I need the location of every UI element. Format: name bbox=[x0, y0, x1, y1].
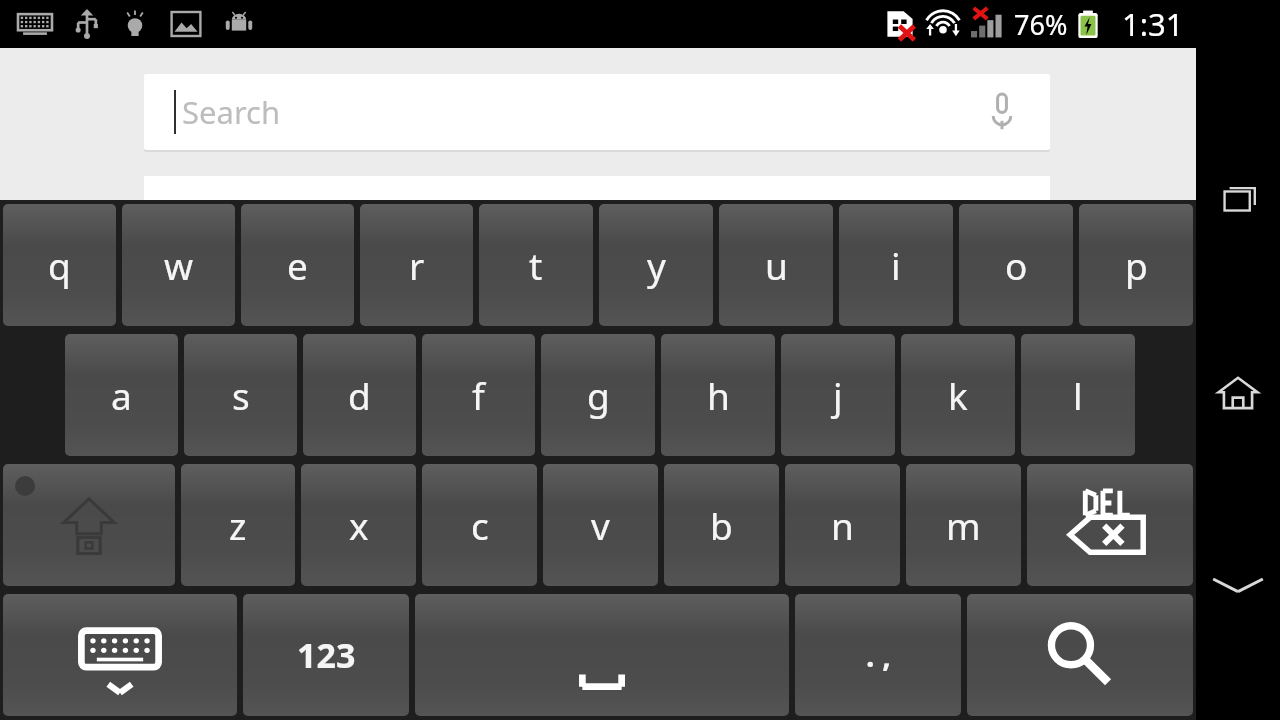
staticText: o bbox=[1005, 240, 1028, 290]
button[interactable]: s bbox=[184, 334, 297, 456]
button[interactable]: Recents bbox=[1203, 166, 1273, 236]
staticText: y bbox=[647, 240, 666, 290]
staticText: c bbox=[471, 500, 489, 550]
staticText: r bbox=[409, 240, 425, 290]
staticText: i bbox=[891, 240, 901, 290]
button[interactable]: m bbox=[906, 464, 1021, 586]
staticText: 1:31 bbox=[1122, 3, 1184, 45]
staticText: f bbox=[472, 370, 485, 420]
staticText: 76% bbox=[1014, 6, 1068, 43]
button[interactable]: c bbox=[422, 464, 537, 586]
staticText: . , bbox=[866, 635, 891, 676]
button[interactable]: Shift bbox=[3, 464, 175, 586]
staticText: q bbox=[48, 240, 71, 290]
button[interactable]: f bbox=[422, 334, 535, 456]
button[interactable]: n bbox=[785, 464, 900, 586]
button[interactable]: k bbox=[901, 334, 1015, 456]
staticText: b bbox=[710, 500, 733, 550]
button[interactable]: u bbox=[719, 204, 833, 326]
button[interactable]: l bbox=[1021, 334, 1135, 456]
button[interactable]: Search bbox=[967, 594, 1193, 716]
button[interactable]: Search bbox=[144, 74, 1050, 150]
button[interactable]: e bbox=[241, 204, 354, 326]
staticText: n bbox=[831, 500, 854, 550]
button[interactable]: a bbox=[65, 334, 178, 456]
button[interactable]: t bbox=[479, 204, 593, 326]
button[interactable]: p bbox=[1079, 204, 1193, 326]
staticText: 123 bbox=[297, 632, 356, 678]
button[interactable]: Voice search bbox=[980, 90, 1024, 134]
button[interactable]: Home bbox=[1203, 358, 1273, 428]
button[interactable]: Space bbox=[415, 594, 789, 716]
staticText: t bbox=[529, 240, 543, 290]
staticText: u bbox=[765, 240, 788, 290]
button[interactable]: v bbox=[543, 464, 658, 586]
button[interactable]: z bbox=[181, 464, 295, 586]
button[interactable]: Delete bbox=[1027, 464, 1193, 586]
button[interactable]: Hide keyboard bbox=[3, 594, 237, 716]
button[interactable]: d bbox=[303, 334, 416, 456]
button[interactable]: x bbox=[301, 464, 416, 586]
staticText: d bbox=[348, 370, 371, 420]
button[interactable]: w bbox=[122, 204, 235, 326]
staticText: m bbox=[946, 500, 981, 550]
button[interactable]: i bbox=[839, 204, 953, 326]
staticText: Search bbox=[182, 91, 281, 133]
button[interactable]: r bbox=[360, 204, 473, 326]
staticText: k bbox=[948, 370, 968, 420]
staticText: a bbox=[111, 370, 132, 420]
staticText: z bbox=[229, 500, 247, 550]
button[interactable]: 123 bbox=[243, 594, 409, 716]
staticText: s bbox=[232, 370, 250, 420]
button[interactable]: . , bbox=[795, 594, 961, 716]
staticText: g bbox=[587, 370, 610, 420]
button[interactable]: Back bbox=[1203, 550, 1273, 620]
staticText: h bbox=[707, 370, 730, 420]
button[interactable]: q bbox=[3, 204, 116, 326]
staticText: w bbox=[164, 240, 194, 290]
button[interactable]: h bbox=[661, 334, 775, 456]
staticText: j bbox=[833, 370, 843, 420]
button[interactable]: j bbox=[781, 334, 895, 456]
button[interactable]: o bbox=[959, 204, 1073, 326]
staticText: l bbox=[1073, 370, 1083, 420]
staticText: p bbox=[1125, 240, 1148, 290]
staticText: x bbox=[349, 500, 369, 550]
staticText: v bbox=[591, 500, 610, 550]
button[interactable]: g bbox=[541, 334, 655, 456]
staticText: e bbox=[287, 240, 308, 290]
button[interactable]: y bbox=[599, 204, 713, 326]
button[interactable]: b bbox=[664, 464, 779, 586]
